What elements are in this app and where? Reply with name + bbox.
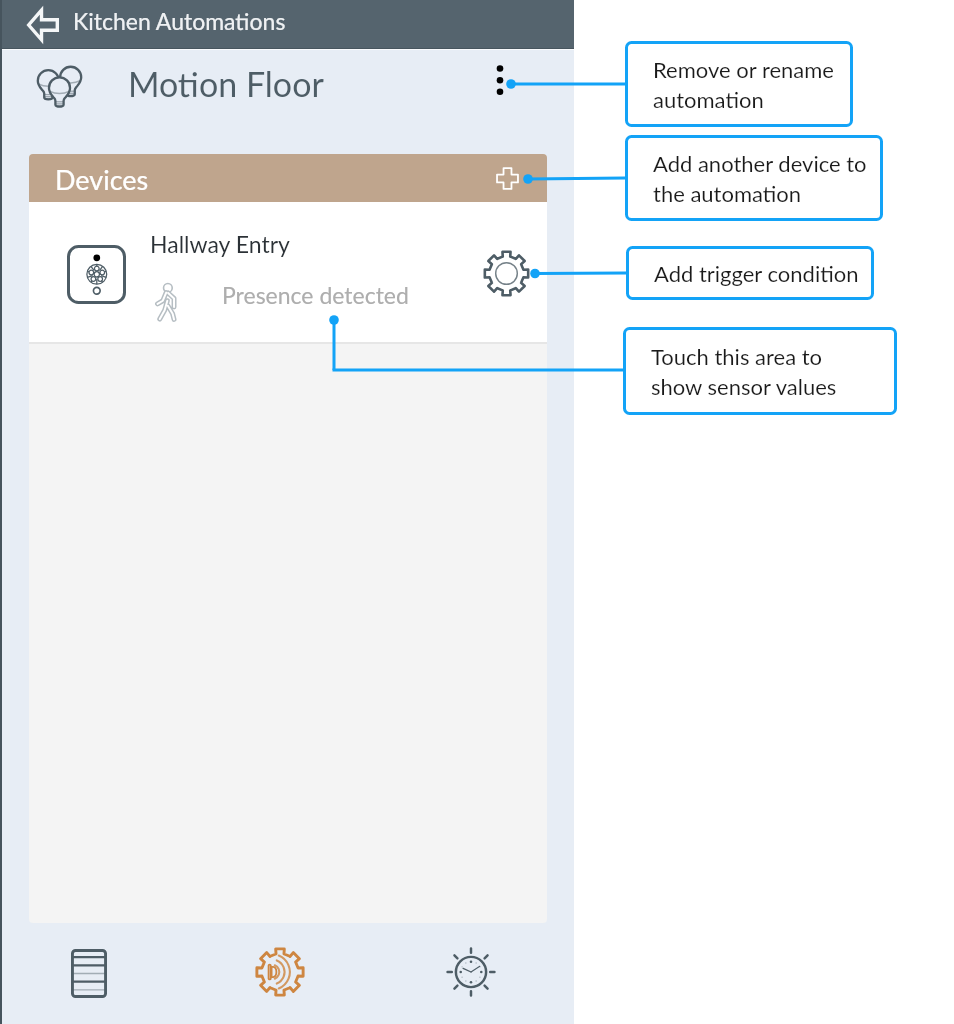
button[interactable]: Add trigger condition	[478, 245, 534, 301]
button[interactable]	[29, 202, 547, 344]
staticText: Kitchen Automations	[73, 7, 286, 35]
button[interactable]: Add device	[487, 158, 528, 199]
staticText: Remove or rename	[653, 56, 834, 82]
staticText: Motion Floor	[128, 63, 324, 104]
button[interactable]: Back	[20, 4, 64, 45]
staticText: show sensor values	[651, 373, 837, 399]
button[interactable]: More options	[482, 60, 518, 108]
staticText: Touch this area to	[651, 343, 823, 369]
staticText: automation	[653, 86, 764, 112]
staticText: Presence detected	[222, 281, 409, 309]
button[interactable]	[29, 154, 547, 202]
button[interactable]: Schedules	[421, 932, 521, 1012]
staticText: Add trigger condition	[654, 260, 859, 286]
button[interactable]: Devices	[39, 932, 139, 1014]
button[interactable]: Automations	[230, 932, 330, 1012]
staticText: Devices	[55, 163, 149, 195]
staticText: Hallway Entry	[150, 230, 290, 258]
staticText: the automation	[653, 180, 802, 206]
staticText: Add another device to	[653, 150, 867, 176]
